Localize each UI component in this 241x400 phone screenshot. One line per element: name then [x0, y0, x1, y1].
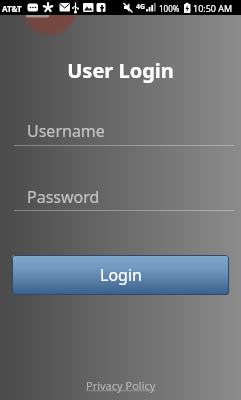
staticText: Login	[100, 264, 142, 286]
staticText: Username	[27, 120, 105, 142]
staticText: Privacy Policy	[86, 378, 156, 393]
button[interactable]: Username	[14, 112, 234, 146]
staticText: Password	[27, 186, 100, 208]
button[interactable]: Login	[12, 255, 229, 295]
button[interactable]: Password	[14, 177, 234, 211]
staticText: 100%	[159, 3, 180, 14]
staticText: 4G	[136, 2, 146, 12]
staticText: 10:50 AM	[193, 2, 233, 14]
staticText: User Login	[0, 57, 241, 84]
button[interactable]: Privacy Policy	[86, 378, 156, 393]
staticText: AT&T	[2, 3, 22, 14]
